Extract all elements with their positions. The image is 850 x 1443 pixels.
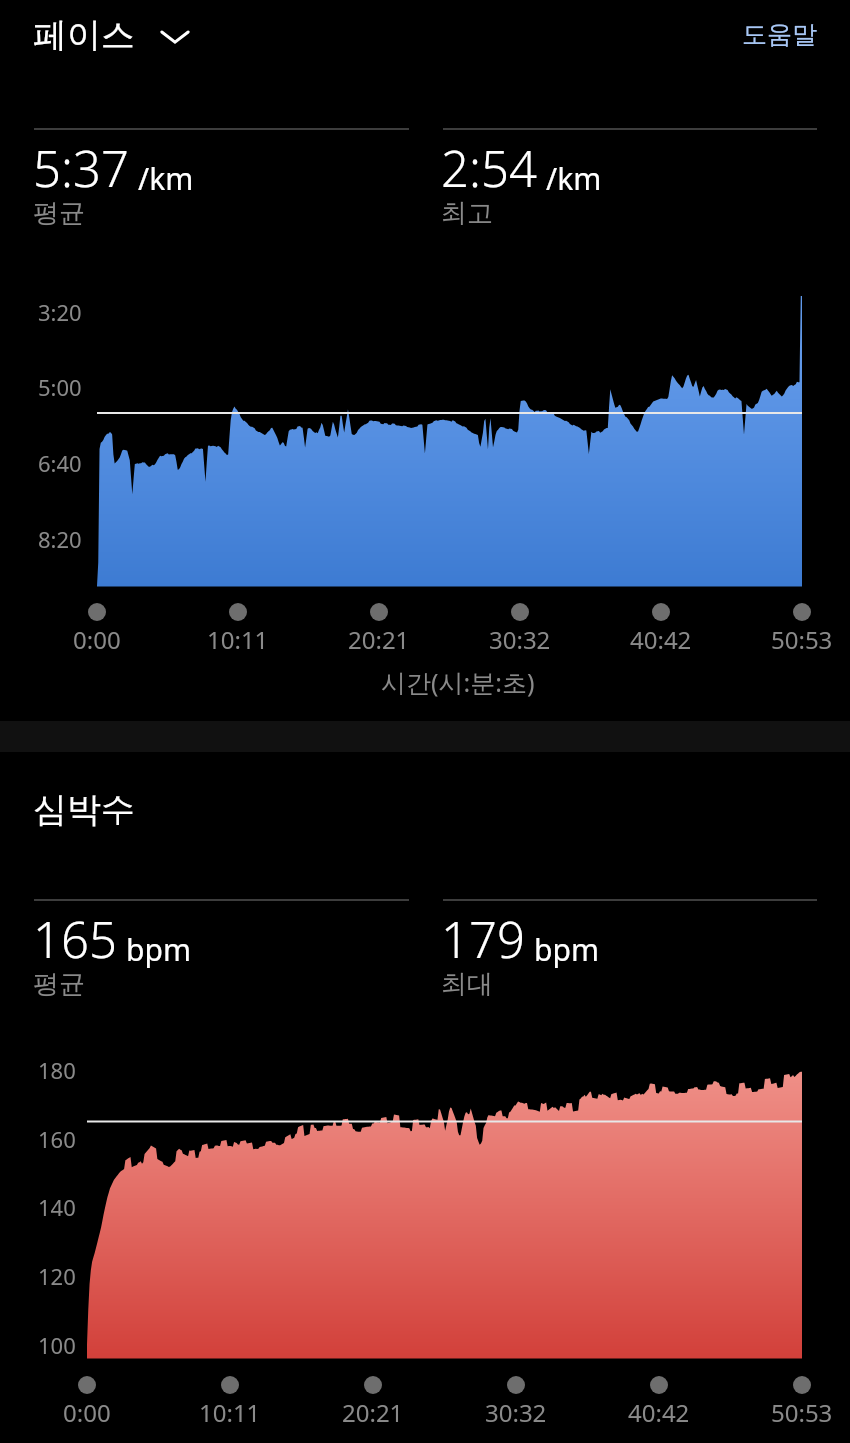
staticText: 시간(시:분:초) <box>381 665 535 699</box>
staticText: 도움말 <box>742 19 817 50</box>
staticText: 50:53 <box>771 1396 833 1429</box>
staticText: 3:20 <box>38 297 82 327</box>
staticText: 100 <box>38 1330 76 1360</box>
staticText: 180 <box>38 1055 76 1085</box>
staticText: 5:00 <box>38 372 82 402</box>
staticText: /km <box>138 158 194 199</box>
staticText: 50:53 <box>771 623 833 656</box>
staticText: 20:21 <box>348 623 410 656</box>
staticText: 165 <box>33 906 117 973</box>
staticText: 30:32 <box>485 1396 547 1429</box>
staticText: 최고 <box>441 197 493 230</box>
button[interactable]: 페이스 <box>28 9 195 62</box>
staticText: 140 <box>38 1192 76 1222</box>
staticText: /km <box>546 158 602 199</box>
staticText: 8:20 <box>38 524 82 554</box>
staticText: 40:42 <box>630 623 692 656</box>
staticText: 0:00 <box>73 623 121 656</box>
button[interactable]: 도움말 <box>742 19 817 50</box>
staticText: 120 <box>38 1261 76 1291</box>
staticText: 심박수 <box>33 788 135 831</box>
button[interactable]: Pace chart <box>34 280 817 610</box>
staticText: 30:32 <box>489 623 551 656</box>
staticText: 10:11 <box>199 1396 261 1429</box>
staticText: 평균 <box>33 197 85 230</box>
staticText: bpm <box>534 929 599 970</box>
button[interactable]: 5:37 <box>33 135 408 235</box>
staticText: 최대 <box>441 968 493 1001</box>
staticText: 페이스 <box>33 14 135 57</box>
button[interactable]: 165 <box>33 906 408 1006</box>
staticText: bpm <box>126 929 191 970</box>
staticText: 2:54 <box>441 135 537 202</box>
button[interactable]: Heart rate chart <box>34 1055 817 1360</box>
button[interactable]: 2:54 <box>441 135 816 235</box>
staticText: 179 <box>441 906 525 973</box>
staticText: 0:00 <box>63 1396 111 1429</box>
staticText: 20:21 <box>342 1396 404 1429</box>
staticText: 10:11 <box>207 623 269 656</box>
staticText: 6:40 <box>38 448 82 478</box>
staticText: 평균 <box>33 968 85 1001</box>
staticText: 160 <box>38 1124 76 1154</box>
other: Change metric <box>155 16 195 56</box>
staticText: 40:42 <box>628 1396 690 1429</box>
staticText: 5:37 <box>33 135 129 202</box>
button[interactable]: 179 <box>441 906 816 1006</box>
